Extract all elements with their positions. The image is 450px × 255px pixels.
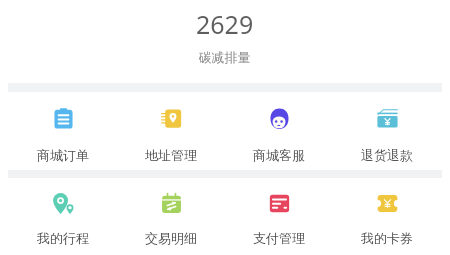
staticText: 商城客服	[253, 147, 305, 163]
button[interactable]: 商城客服	[225, 92, 333, 170]
button[interactable]: 商城订单	[9, 92, 117, 170]
button[interactable]: 退货退款	[333, 92, 441, 170]
staticText: 商城订单	[37, 147, 89, 163]
button[interactable]: 支付管理	[225, 178, 333, 255]
staticText: 支付管理	[253, 230, 305, 246]
staticText: 退货退款	[361, 147, 413, 163]
staticText: 我的行程	[37, 230, 89, 246]
button[interactable]: 我的行程	[9, 178, 117, 255]
button[interactable]: 我的卡券	[333, 178, 441, 255]
staticText: 交易明细	[145, 230, 197, 246]
button[interactable]: 地址管理	[117, 92, 225, 170]
staticText: 碳减排量	[199, 50, 251, 66]
staticText: 地址管理	[145, 147, 197, 163]
button[interactable]: 交易明细	[117, 178, 225, 255]
staticText: 我的卡券	[361, 230, 413, 246]
staticText: 2629	[196, 7, 254, 41]
